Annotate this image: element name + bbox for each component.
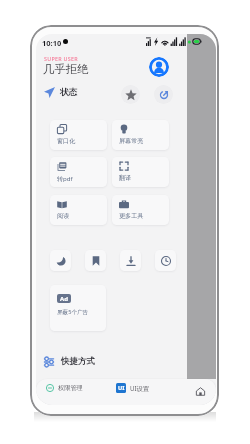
staticText: 转pdf <box>57 174 73 182</box>
button[interactable]: Account <box>149 57 169 77</box>
button[interactable]: Bookmarks <box>85 250 106 271</box>
staticText: 权限管理 <box>58 384 83 392</box>
button[interactable]: UI <box>116 383 149 393</box>
staticText: 更多工具 <box>119 212 144 220</box>
button[interactable]: 权限管理 <box>46 384 83 392</box>
button[interactable]: Favorite <box>121 85 140 104</box>
staticText: 10:10 <box>42 38 62 48</box>
button[interactable]: Ad <box>50 285 106 331</box>
staticText: SUPER USER <box>44 55 78 62</box>
staticText: 快捷方式 <box>61 356 95 367</box>
button[interactable]: 阅读 <box>50 195 107 225</box>
button[interactable]: History <box>155 250 176 271</box>
button[interactable]: 转pdf <box>50 157 107 187</box>
staticText: 窗口化 <box>57 137 76 145</box>
button[interactable]: 翻译 <box>112 157 169 187</box>
staticText: 状态 <box>60 87 78 98</box>
staticText: 屏蔽5个广告 <box>57 308 89 316</box>
staticText: 阅读 <box>57 212 70 220</box>
button[interactable]: 屏幕常亮 <box>112 120 169 150</box>
button[interactable]: 更多工具 <box>112 195 169 225</box>
button[interactable]: Downloads <box>120 250 141 271</box>
staticText: Ad <box>60 295 68 303</box>
staticText: 几乎拒绝 <box>43 62 89 76</box>
button[interactable]: 窗口化 <box>50 120 107 150</box>
button[interactable]: Dark mode <box>50 250 71 271</box>
button[interactable]: Refresh <box>154 85 173 104</box>
staticText: UI设置 <box>130 384 149 392</box>
button[interactable]: Home <box>192 383 208 399</box>
staticText: UI <box>118 384 125 392</box>
staticText: 翻译 <box>119 174 132 182</box>
staticText: 屏幕常亮 <box>119 137 144 145</box>
button[interactable]: 快捷方式 <box>44 356 95 367</box>
